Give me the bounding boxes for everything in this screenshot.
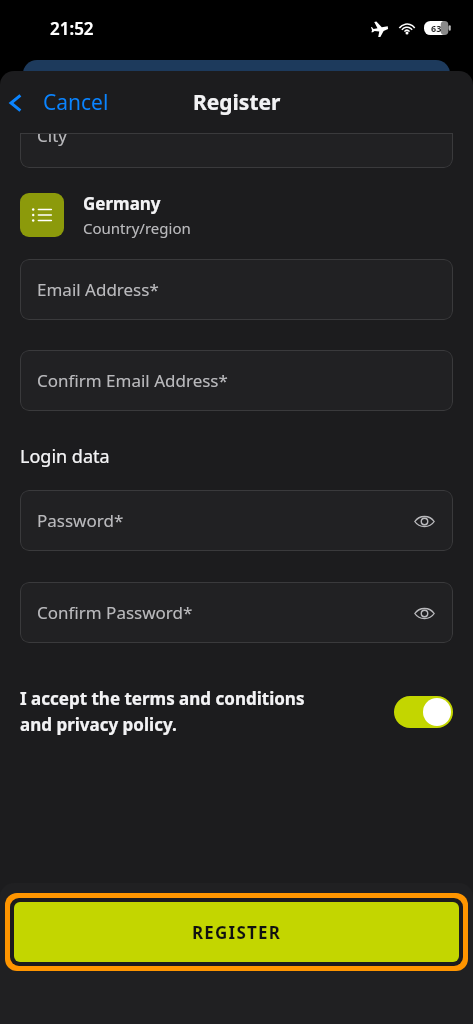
staticText: REGISTER <box>192 921 282 944</box>
staticText: Germany <box>83 192 161 215</box>
button[interactable]: Password* <box>20 490 453 551</box>
other: Accept terms toggle <box>394 696 453 728</box>
button[interactable]: I accept the terms and conditions and pr… <box>0 683 473 740</box>
staticText: City <box>37 133 67 147</box>
button[interactable]: City <box>20 133 453 168</box>
button[interactable]: Show password <box>409 506 439 536</box>
staticText: Password* <box>37 509 124 532</box>
staticText: Country/region <box>83 218 191 238</box>
staticText: Confirm Email Address* <box>37 369 228 392</box>
button[interactable]: Cancel <box>0 82 119 123</box>
staticText: Register <box>193 88 281 117</box>
staticText: I accept the terms and conditions and pr… <box>20 687 394 736</box>
button[interactable]: Confirm Password* <box>20 582 453 643</box>
staticText: 21:52 <box>50 17 94 40</box>
button[interactable]: Show password <box>409 598 439 628</box>
button[interactable]: Confirm Email Address* <box>20 350 453 411</box>
staticText: Cancel <box>43 88 109 117</box>
staticText: Email Address* <box>37 278 159 301</box>
staticText: Confirm Password* <box>37 601 193 624</box>
button[interactable]: Email Address* <box>20 259 453 320</box>
staticText: 63 <box>431 22 442 34</box>
button[interactable]: REGISTER <box>5 893 468 971</box>
button[interactable]: Germany <box>0 187 473 243</box>
staticText: Login data <box>20 444 110 469</box>
